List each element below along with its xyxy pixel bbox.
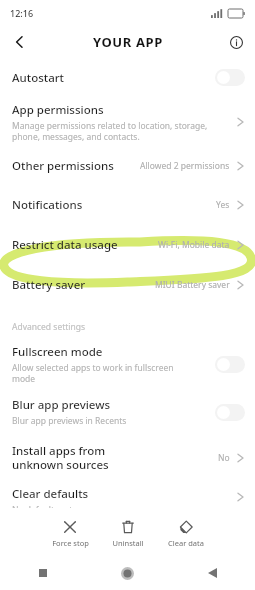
- staticText: Blur app previews: [12, 397, 111, 413]
- staticText: MIUI Battery saver: [155, 279, 230, 291]
- button[interactable]: Uninstall: [99, 516, 157, 552]
- staticText: Restrict data usage: [12, 237, 118, 253]
- staticText: Uninstall: [112, 538, 144, 548]
- button[interactable]: Home: [85, 556, 170, 590]
- staticText: Other permissions: [12, 158, 114, 174]
- staticText: Clear defaults: [12, 486, 89, 502]
- button[interactable]: Back: [170, 556, 255, 590]
- button[interactable]: Recents: [0, 556, 85, 590]
- button[interactable]: Autostart: [0, 58, 255, 95]
- staticText: Manage permissions related to location, …: [12, 120, 208, 142]
- staticText: Fullscreen mode: [12, 344, 103, 360]
- staticText: Battery saver: [12, 277, 86, 293]
- staticText: No defaults set.: [12, 504, 75, 508]
- button[interactable]: Battery saver: [0, 266, 255, 305]
- button[interactable]: Other permissions: [0, 150, 255, 186]
- staticText: Yes: [216, 199, 230, 211]
- staticText: Wi-Fi, Mobile data: [158, 239, 230, 251]
- button[interactable]: Back: [6, 29, 32, 55]
- staticText: Force stop: [52, 538, 89, 548]
- staticText: Advanced settings: [12, 321, 86, 333]
- button[interactable]: Restrict data usage: [0, 226, 255, 266]
- button[interactable]: Toggle: [215, 404, 245, 421]
- staticText: Notifications: [12, 197, 83, 213]
- button[interactable]: Clear defaults: [0, 480, 255, 516]
- button[interactable]: Blur app previews: [0, 391, 255, 436]
- staticText: Clear data: [168, 538, 204, 548]
- button[interactable]: App info: [223, 29, 249, 55]
- staticText: Allow selected apps to work in fullscree…: [12, 362, 174, 384]
- staticText: 12:16: [10, 7, 34, 19]
- staticText: Install apps from unknown sources: [12, 443, 109, 472]
- button[interactable]: Toggle: [215, 69, 245, 86]
- button[interactable]: Notifications: [0, 186, 255, 226]
- button[interactable]: Install apps from unknown sources: [0, 436, 255, 480]
- button[interactable]: Clear data: [157, 516, 215, 552]
- button[interactable]: App permissions: [0, 95, 255, 150]
- staticText: Allowed 2 permissions: [140, 160, 230, 172]
- staticText: YOUR APP: [93, 33, 163, 51]
- button[interactable]: Force stop: [41, 516, 99, 552]
- button[interactable]: Fullscreen mode: [0, 342, 255, 391]
- button[interactable]: Toggle: [215, 356, 245, 373]
- staticText: No: [218, 452, 230, 464]
- staticText: App permissions: [12, 102, 104, 118]
- staticText: Autostart: [12, 70, 65, 86]
- staticText: Blur app previews in Recents: [12, 415, 127, 427]
